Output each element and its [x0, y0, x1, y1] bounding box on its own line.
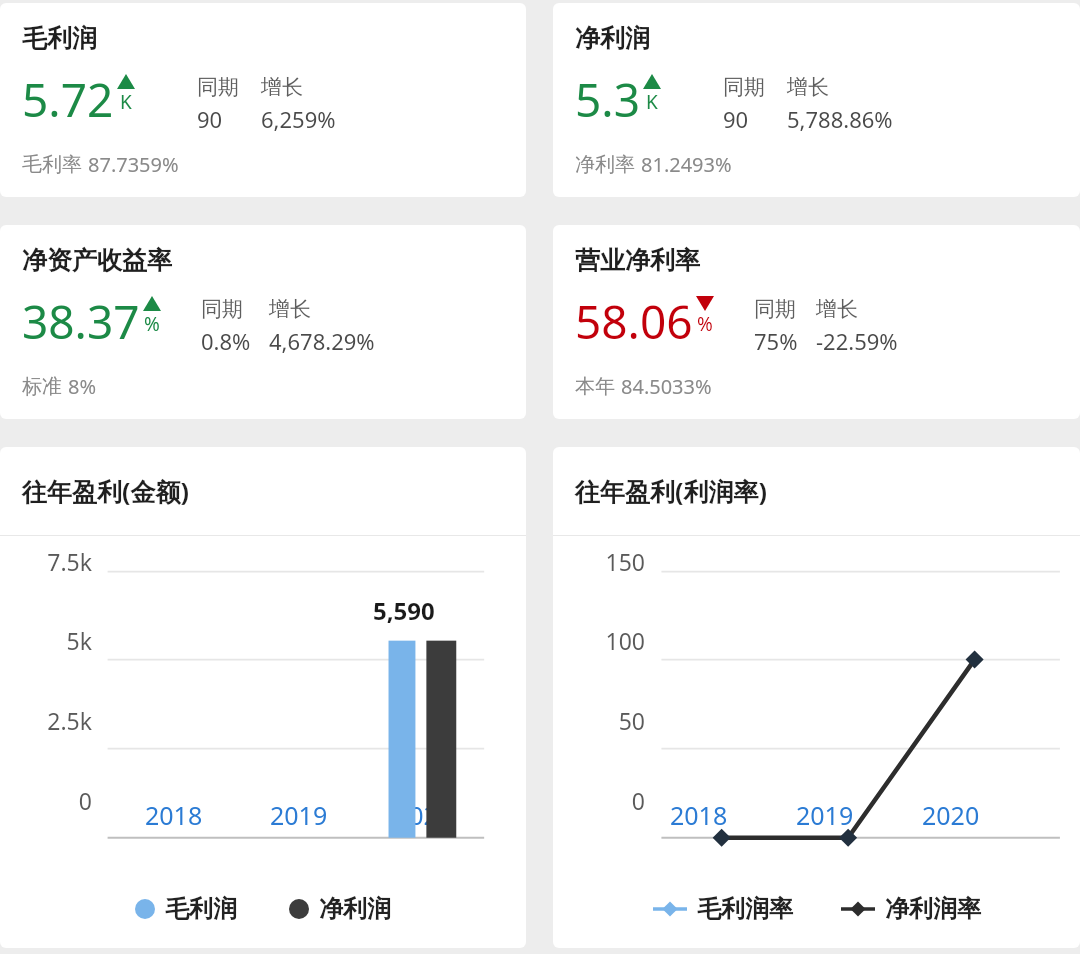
staticText: 毛利润: [22, 23, 97, 54]
button[interactable]: 净利润率: [835, 894, 987, 924]
staticText: 75%: [754, 326, 798, 356]
staticText: 同期: [201, 296, 243, 322]
staticText: 净利率: [575, 152, 635, 177]
button[interactable]: 往年盈利(利润率): [553, 447, 1080, 948]
staticText: 同期: [754, 296, 796, 322]
button[interactable]: 净资产收益率: [0, 225, 526, 419]
staticText: 2018: [670, 798, 728, 832]
staticText: 50: [553, 705, 645, 736]
staticText: 同期: [197, 74, 239, 100]
staticText: 0.8%: [201, 326, 251, 356]
staticText: 5k: [0, 625, 92, 656]
staticText: 净资产收益率: [22, 245, 172, 276]
staticText: 5.3: [575, 68, 640, 131]
staticText: 87.7359%: [88, 151, 179, 178]
staticText: 营业净利率: [575, 245, 700, 276]
staticText: %: [144, 311, 160, 337]
button[interactable]: 毛利润: [129, 894, 243, 924]
staticText: 90: [723, 104, 749, 134]
staticText: 8%: [68, 373, 97, 400]
staticText: 100: [553, 625, 645, 656]
staticText: 净利润: [319, 894, 391, 924]
staticText: 5,788.86%: [787, 104, 893, 134]
staticText: K: [120, 89, 132, 115]
staticText: 38.37: [22, 290, 140, 353]
staticText: 58.06: [575, 290, 693, 353]
staticText: 2020: [922, 798, 980, 832]
staticText: 0: [553, 785, 645, 816]
button[interactable]: 毛利润: [0, 3, 526, 197]
staticText: 增长: [816, 296, 858, 322]
staticText: 往年盈利(利润率): [575, 474, 767, 508]
staticText: 2019: [796, 798, 854, 832]
staticText: 同期: [723, 74, 765, 100]
staticText: 81.2493%: [641, 151, 732, 178]
staticText: 本年: [575, 374, 615, 399]
staticText: 毛利率: [22, 152, 82, 177]
staticText: 90: [197, 104, 223, 134]
staticText: 2019: [270, 798, 328, 832]
staticText: 0: [0, 785, 92, 816]
staticText: 84.5033%: [621, 373, 712, 400]
staticText: 毛利润率: [697, 894, 793, 924]
staticText: -22.59%: [816, 326, 898, 356]
staticText: 增长: [787, 74, 829, 100]
button[interactable]: 净利润: [553, 3, 1080, 197]
staticText: 往年盈利(金额): [22, 474, 189, 508]
staticText: 2.5k: [0, 705, 92, 736]
button[interactable]: 净利润: [283, 894, 397, 924]
staticText: 2018: [145, 798, 203, 832]
staticText: K: [646, 89, 658, 115]
staticText: 6,259%: [261, 104, 336, 134]
button[interactable]: 往年盈利(金额): [0, 447, 526, 948]
staticText: 4,678.29%: [269, 326, 375, 356]
staticText: 标准: [22, 374, 62, 399]
staticText: %: [697, 311, 713, 337]
staticText: 毛利润: [165, 894, 237, 924]
staticText: 增长: [269, 296, 311, 322]
staticText: 2020: [395, 798, 453, 832]
staticText: 150: [553, 546, 645, 577]
staticText: 净利润率: [885, 894, 981, 924]
staticText: 5,590: [373, 594, 435, 627]
button[interactable]: 营业净利率: [553, 225, 1080, 419]
staticText: 5.72: [22, 68, 114, 131]
button[interactable]: 毛利润率: [647, 894, 799, 924]
staticText: 净利润: [575, 23, 650, 54]
staticText: 增长: [261, 74, 303, 100]
staticText: 7.5k: [0, 546, 92, 577]
